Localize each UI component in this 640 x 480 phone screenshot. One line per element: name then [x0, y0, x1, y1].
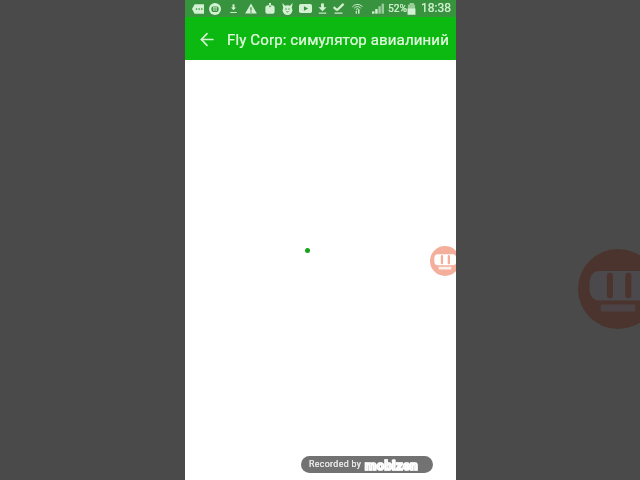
button[interactable]: Game view [185, 60, 456, 480]
button[interactable]: Back [191, 23, 223, 55]
staticText: Recorded by [309, 459, 362, 469]
staticText: mobizen [365, 458, 418, 473]
staticText: 52% [388, 3, 407, 15]
staticText: 18:38 [421, 1, 451, 15]
staticText: Fly Corp: симулятор авиалиний [227, 31, 449, 49]
staticText: mobizen [365, 458, 418, 473]
